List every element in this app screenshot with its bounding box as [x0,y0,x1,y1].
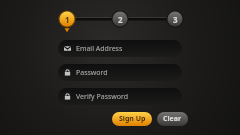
staticText: 2 [118,14,123,25]
staticText: Clear [163,114,182,124]
button[interactable]: Step 3 [167,11,183,27]
button[interactable]: Verify Password [58,88,182,105]
staticText: Sign Up [119,114,146,124]
staticText: Verify Password [76,92,129,102]
staticText: Email Address [76,44,123,54]
button[interactable]: Sign Up [112,112,152,126]
button[interactable]: Email Address [58,40,182,57]
staticText: Password [76,68,108,78]
staticText: 1 [65,14,70,25]
staticText: 3 [173,14,178,25]
button[interactable]: Password [58,64,182,81]
button[interactable]: Clear [157,112,188,126]
button[interactable]: Step 2 [112,11,128,27]
button[interactable]: Step 1 [59,11,75,27]
